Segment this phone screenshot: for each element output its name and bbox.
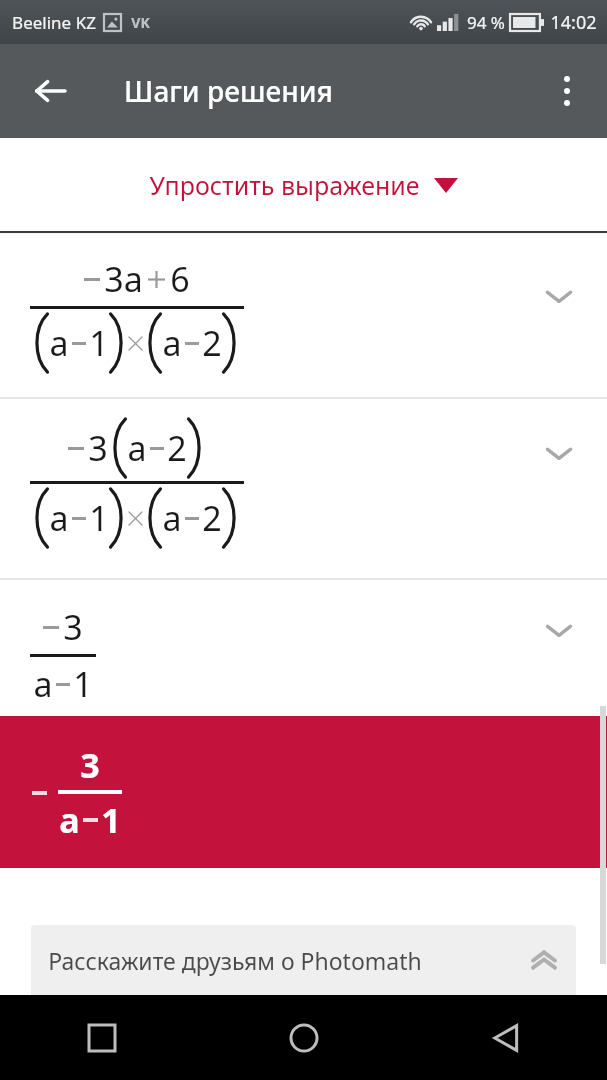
staticText: 1 [101, 797, 121, 843]
staticText: Beeline KZ [12, 11, 96, 34]
staticText: 94 % [467, 11, 505, 34]
button[interactable]: 3 [0, 399, 607, 578]
staticText: 3 [63, 604, 83, 650]
button[interactable]: Home [203, 995, 405, 1080]
staticText: 14:02 [550, 10, 597, 35]
button[interactable]: Расскажите друзьям о Photomath [31, 925, 576, 995]
staticText: 2 [167, 425, 187, 471]
other: Expand step [533, 604, 585, 656]
button[interactable]: 3 [0, 580, 607, 716]
staticText: 3 [88, 425, 108, 471]
staticText: 1 [73, 661, 93, 707]
button[interactable]: Упростить выражение [0, 138, 607, 231]
staticText: VK [131, 13, 150, 32]
staticText: 2 [202, 495, 222, 541]
staticText: a [49, 320, 69, 366]
button[interactable]: Back [18, 59, 82, 123]
staticText: Упростить выражение [149, 168, 420, 202]
button[interactable]: Back [405, 995, 607, 1080]
staticText: 2 [202, 320, 222, 366]
staticText: Шаги решения [124, 72, 333, 110]
other: Expand step [533, 427, 585, 479]
staticText: 1 [89, 495, 109, 541]
staticText: a [127, 425, 147, 471]
button[interactable]: More options [537, 61, 597, 121]
other: Expand step [533, 270, 585, 322]
staticText: 3 [80, 742, 100, 788]
staticText: a [162, 320, 182, 366]
button[interactable]: 3a [0, 234, 607, 397]
staticText: 6 [170, 256, 190, 302]
staticText: a [49, 495, 69, 541]
staticText: a [162, 495, 182, 541]
staticText: a [33, 661, 53, 707]
button[interactable]: Recent apps [0, 995, 203, 1080]
staticText: 3a [104, 256, 143, 302]
staticText: 1 [89, 320, 109, 366]
staticText: Расскажите друзьям о Photomath [48, 945, 422, 976]
button[interactable]: 3 [0, 716, 607, 868]
other: Expand [520, 936, 568, 984]
staticText: a [59, 797, 80, 843]
